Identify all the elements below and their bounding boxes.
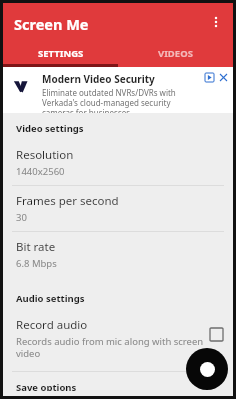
staticText: Records audio from mic along with screen… [16, 335, 204, 360]
button[interactable]: Resolution [3, 140, 233, 185]
staticText: Bit rate [16, 239, 56, 255]
staticText: SETTINGS [38, 47, 84, 60]
staticText: Save options [16, 381, 77, 391]
button[interactable]: SETTINGS [3, 43, 118, 67]
button[interactable]: Modern Video Security [3, 67, 233, 113]
button[interactable]: VIDEOS [118, 43, 233, 67]
button[interactable]: Start recording [186, 348, 228, 390]
button[interactable]: Record audio [3, 310, 233, 367]
staticText: Screen Me [14, 14, 89, 34]
button[interactable]: Close ad [218, 72, 229, 83]
staticText: Resolution [16, 147, 74, 163]
button[interactable]: Bit rate [3, 232, 233, 277]
staticText: Eliminate outdated NVRs/DVRs with Verkad… [42, 87, 202, 113]
staticText: 1440x2560 [16, 165, 65, 178]
staticText: 30 [16, 211, 27, 224]
staticText: Record audio [16, 317, 88, 333]
button[interactable]: More options [203, 9, 229, 35]
staticText: Video settings [16, 122, 84, 135]
staticText: Modern Video Security [42, 72, 155, 86]
staticText: VIDEOS [158, 47, 193, 60]
button[interactable]: Ad choices [204, 72, 215, 83]
button[interactable]: Frames per second [3, 186, 233, 231]
staticText: Audio settings [16, 292, 85, 305]
staticText: Frames per second [16, 193, 119, 209]
button[interactable]: Record audio toggle [210, 328, 223, 341]
staticText: 6.8 Mbps [16, 257, 57, 270]
